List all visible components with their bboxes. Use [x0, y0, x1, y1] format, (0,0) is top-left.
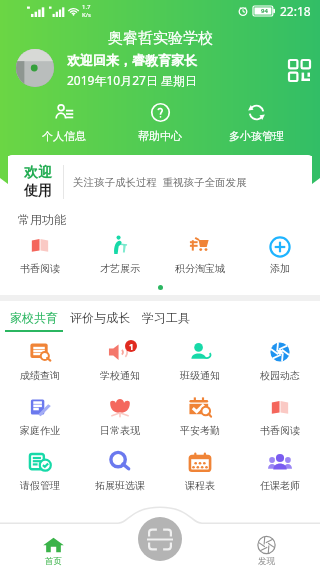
staticText: 1 — [129, 341, 134, 352]
button[interactable]: 书香阅读 — [0, 235, 80, 275]
staticText: 1.7 — [82, 3, 91, 11]
button[interactable]: 二维码 — [289, 60, 310, 81]
staticText: 课程表 — [185, 479, 215, 492]
staticText: 睿教育家长 — [132, 52, 197, 68]
button[interactable]: 成绩查询 — [0, 342, 80, 382]
staticText: 首页 — [45, 556, 62, 567]
button[interactable]: 个人信息 — [16, 103, 112, 143]
staticText: 欢迎回来， — [67, 52, 132, 68]
staticText: 多小孩管理 — [229, 129, 284, 143]
button[interactable]: 家庭作业 — [0, 397, 80, 437]
button[interactable]: 发现 — [213, 524, 320, 567]
button[interactable]: 请假管理 — [0, 452, 80, 492]
button[interactable]: 积分淘宝城 — [160, 235, 240, 275]
staticText: 奥睿哲实验学校 — [108, 29, 213, 48]
button[interactable]: 拓展班选课 — [80, 452, 160, 492]
button[interactable]: 头像 — [16, 49, 54, 87]
staticText: 校园动态 — [260, 369, 300, 382]
staticText: 积分淘宝城 — [175, 262, 225, 275]
staticText: 班级通知 — [180, 369, 220, 382]
staticText: 22:18 — [280, 3, 311, 19]
staticText: 平安考勤 — [180, 424, 220, 437]
staticText: 书香阅读 — [260, 424, 300, 437]
button[interactable]: 1 — [80, 342, 160, 382]
staticText: 书香阅读 — [20, 262, 60, 275]
staticText: 拓展班选课 — [95, 479, 145, 492]
staticText: 日常表现 — [100, 424, 140, 437]
staticText: 学校通知 — [100, 369, 140, 382]
staticText: 欢迎 — [24, 164, 52, 182]
staticText: 家校共育 — [10, 310, 58, 325]
staticText: K/s — [82, 11, 91, 19]
staticText: 关注孩子成长过程 重视孩子全面发展 — [73, 175, 247, 189]
staticText: 才艺展示 — [100, 262, 140, 275]
button[interactable]: 学习工具 — [136, 310, 196, 332]
button[interactable]: 书香阅读 — [240, 397, 320, 437]
staticText: 家庭作业 — [20, 424, 60, 437]
staticText: 个人信息 — [42, 129, 86, 143]
staticText: 任课老师 — [260, 479, 300, 492]
button[interactable]: 帮助中心 — [112, 103, 208, 143]
button[interactable]: 添加 — [240, 235, 320, 275]
staticText: 94 — [261, 7, 268, 15]
staticText: 学习工具 — [142, 310, 190, 325]
button[interactable]: 班级通知 — [160, 342, 240, 382]
button[interactable]: 课程表 — [160, 452, 240, 492]
staticText: 常用功能 — [18, 212, 66, 227]
button[interactable]: 校园动态 — [240, 342, 320, 382]
button[interactable]: 多小孩管理 — [208, 103, 304, 143]
button[interactable]: 任课老师 — [240, 452, 320, 492]
button[interactable]: 扫一扫 — [138, 517, 182, 561]
staticText: 2019年10月27日 星期日 — [67, 72, 198, 88]
button[interactable]: 平安考勤 — [160, 397, 240, 437]
staticText: 帮助中心 — [138, 129, 182, 143]
button[interactable]: 欢迎 — [8, 155, 312, 209]
staticText: 成绩查询 — [20, 369, 60, 382]
staticText: 发现 — [258, 556, 275, 567]
staticText: 评价与成长 — [70, 310, 130, 325]
button[interactable]: 才艺展示 — [80, 235, 160, 275]
staticText: 添加 — [270, 262, 290, 275]
button[interactable]: 日常表现 — [80, 397, 160, 437]
staticText: 使用 — [24, 182, 52, 200]
staticText: 请假管理 — [20, 479, 60, 492]
button[interactable]: 首页 — [0, 524, 106, 567]
button[interactable]: 家校共育 — [4, 310, 64, 332]
button[interactable]: 评价与成长 — [64, 310, 136, 332]
